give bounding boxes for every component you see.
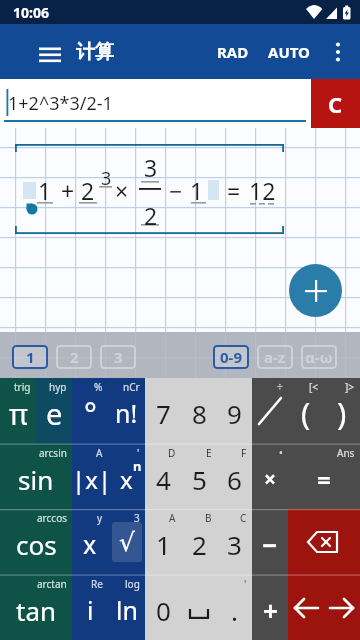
button[interactable]: + [252,575,288,640]
button[interactable]: log [108,575,145,640]
staticText: i [87,593,94,627]
staticText: trig [14,380,31,394]
staticText: ÷ [277,380,283,394]
button[interactable] [288,509,360,575]
staticText: ln [116,593,138,627]
button[interactable]: D [145,444,181,510]
button[interactable]: arctan [0,575,72,640]
button[interactable]: Ans [288,444,360,510]
button[interactable]: 8 [181,378,217,444]
button[interactable]: 9 [216,378,252,444]
button[interactable]: E [181,444,217,510]
button[interactable]: trig [0,378,36,444]
staticText: 0 [156,593,171,628]
staticText: • [279,446,283,460]
staticText: hyp [49,380,67,394]
button[interactable] [289,264,342,317]
button[interactable]: [< [288,378,324,444]
button[interactable]: RAD [212,36,254,68]
button[interactable]: ' [108,444,145,510]
button[interactable]: − [252,509,288,575]
button[interactable]: ' [216,575,252,640]
button[interactable]: Re [72,575,108,640]
staticText: arccos [37,511,67,525]
staticText: a-z [264,347,286,367]
staticText: 3 [114,347,123,367]
staticText: 9 [227,396,242,431]
staticText: 2 [192,527,207,562]
staticText: 8 [192,396,207,431]
button[interactable] [181,575,217,640]
staticText: 10:06 [13,3,49,22]
staticText: arcsin [39,446,67,460]
staticText: cos [16,527,57,562]
button[interactable] [324,575,360,640]
staticText: RAD [217,42,249,62]
button[interactable]: ÷ [252,378,288,444]
button[interactable]: nCr [108,378,145,444]
staticText: AUTO [268,42,310,62]
button[interactable]: C [311,79,360,128]
button[interactable]: α-ω [301,345,337,369]
button[interactable]: 3 [100,345,136,369]
staticText: 0-9 [220,347,242,367]
button[interactable]: 0 [145,575,181,640]
button[interactable]: a-z [257,345,293,369]
button[interactable]: hyp [36,378,72,444]
staticText: A [96,446,103,460]
staticText: C [328,89,343,119]
button[interactable] [288,575,324,640]
staticText: Ans [337,446,355,460]
button[interactable]: 0-9 [213,345,249,369]
button[interactable]: y [72,509,108,575]
staticText: × [115,175,129,206]
button[interactable]: B [181,509,217,575]
staticText: x [83,527,97,561]
button[interactable]: 2 [56,345,92,369]
staticText: + [263,593,278,628]
button[interactable]: ]> [324,378,360,444]
staticText: y [97,511,103,525]
staticText: × [264,465,277,494]
staticText: ]> [345,380,355,394]
staticText: 3 [144,152,158,183]
button[interactable]: arcsin [0,444,72,510]
staticText: Re [91,577,103,591]
staticText: ' [137,446,140,460]
button[interactable]: • [252,444,288,510]
button[interactable]: arccos [0,509,72,575]
staticText: n [133,457,142,475]
button[interactable]: 7 [145,378,181,444]
button[interactable]: % [72,378,108,444]
button[interactable]: 3 [108,509,145,575]
button[interactable]: AUTO [262,36,316,68]
staticText: D [168,446,176,460]
staticText: [< [309,380,319,394]
button[interactable]: F [216,444,252,510]
staticText: 2 [70,347,79,367]
staticText: % [94,380,103,394]
staticText: 4 [156,462,171,497]
staticText: 3 [134,511,140,525]
staticText: . [231,593,238,628]
staticText: − [262,527,278,562]
button[interactable]: C [216,509,252,575]
button[interactable]: 1 [12,345,48,369]
button[interactable]: A [145,509,181,575]
staticText: |x| [72,463,108,496]
staticText: 1 [26,347,35,367]
staticText: e [46,394,63,433]
button[interactable] [324,36,352,68]
staticText: − [169,175,183,206]
staticText: F [241,446,247,460]
staticText: 2 [144,200,158,231]
staticText: B [205,511,212,525]
staticText: ° [84,393,97,434]
staticText: x [120,463,133,496]
staticText: ' [244,577,247,591]
staticText: 3 [227,527,242,562]
staticText: ) [337,392,347,434]
button[interactable]: A [72,444,108,510]
button[interactable] [30,42,70,70]
staticText: + [61,175,75,206]
